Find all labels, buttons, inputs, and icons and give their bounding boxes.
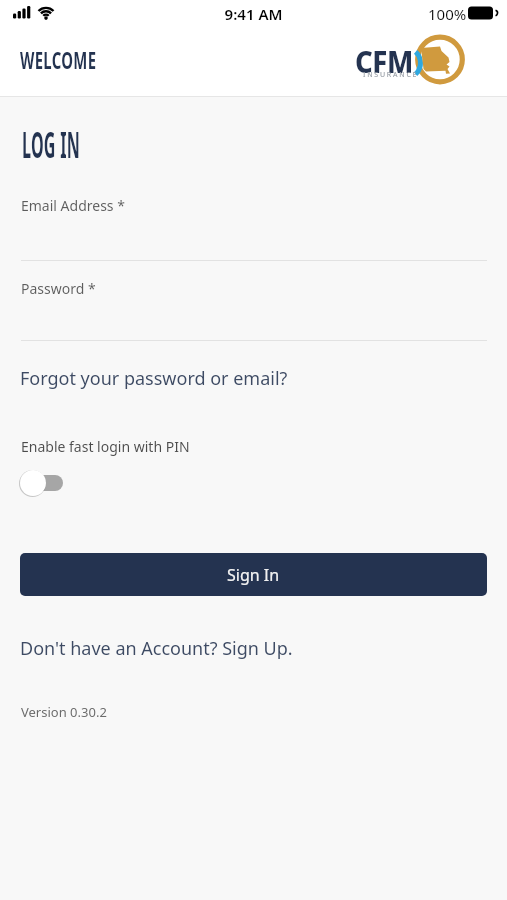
staticText: LOG IN	[22, 121, 80, 169]
button[interactable]: Don't have an Account? Sign Up.	[16, 632, 297, 665]
staticText: 9:41 AM	[0, 4, 507, 24]
staticText: INSURANCE	[363, 70, 419, 80]
staticText: Version 0.30.2	[21, 703, 107, 721]
staticText: WELCOME	[20, 43, 97, 76]
staticText: Forgot your password or email?	[20, 366, 288, 391]
staticText: Enable fast login with PIN	[21, 437, 190, 456]
button[interactable]	[19, 468, 67, 498]
staticText: 100%	[428, 4, 467, 24]
staticText: Don't have an Account? Sign Up.	[20, 636, 293, 661]
staticText: CFM	[355, 41, 413, 82]
button[interactable]: Forgot your password or email?	[16, 362, 292, 395]
staticText: Sign In	[227, 564, 280, 586]
staticText: Password *	[21, 279, 96, 298]
staticText: Email Address *	[21, 196, 125, 215]
button[interactable]: Sign In	[20, 553, 487, 596]
